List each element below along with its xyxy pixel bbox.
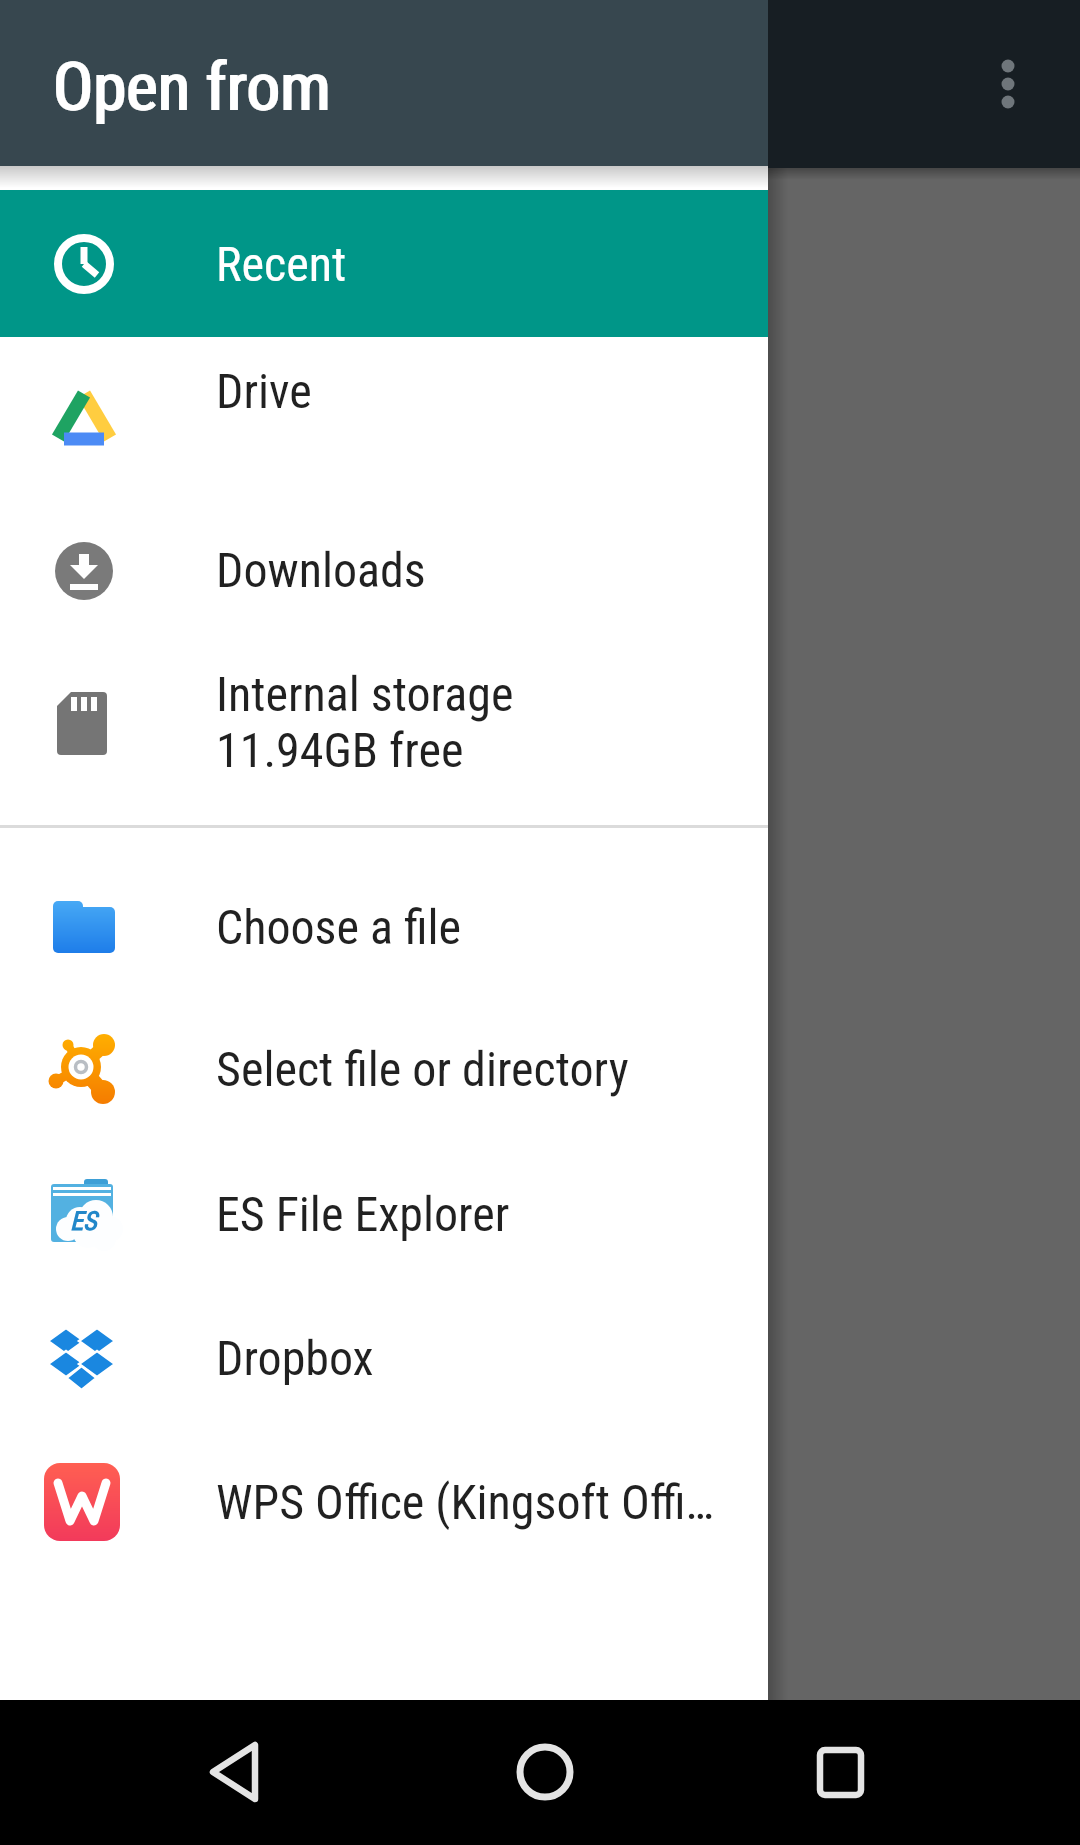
staticText: ES (70, 1206, 97, 1236)
staticText: Drive (216, 363, 312, 419)
button[interactable] (984, 36, 1032, 132)
button[interactable]: Choose a file (0, 855, 768, 999)
staticText: Open from (52, 48, 330, 127)
button[interactable]: Drive (0, 319, 768, 463)
button[interactable]: Select file or directory (0, 997, 768, 1141)
button[interactable] (796, 1727, 886, 1817)
staticText: Recent (216, 236, 347, 292)
staticText: Downloads (216, 542, 426, 598)
staticText: ES File Explorer (216, 1186, 510, 1242)
staticText: Choose a file (216, 899, 462, 955)
button[interactable] (196, 1726, 286, 1816)
staticText: WPS Office (Kingsoft Offi… (216, 1474, 714, 1530)
button[interactable]: ES (0, 1142, 768, 1286)
button[interactable] (500, 1727, 590, 1817)
button[interactable]: Recent (0, 190, 768, 337)
button[interactable]: Dropbox (0, 1286, 768, 1430)
button[interactable]: Downloads (0, 498, 768, 642)
button[interactable]: Internal storage 11.94GB free (0, 634, 768, 811)
staticText: Internal storage 11.94GB free (216, 666, 514, 779)
staticText: Open from (54, 48, 332, 127)
staticText: Select file or directory (216, 1041, 629, 1097)
button[interactable]: WPS Office (Kingsoft Offi… (0, 1430, 768, 1574)
staticText: Dropbox (216, 1330, 374, 1386)
